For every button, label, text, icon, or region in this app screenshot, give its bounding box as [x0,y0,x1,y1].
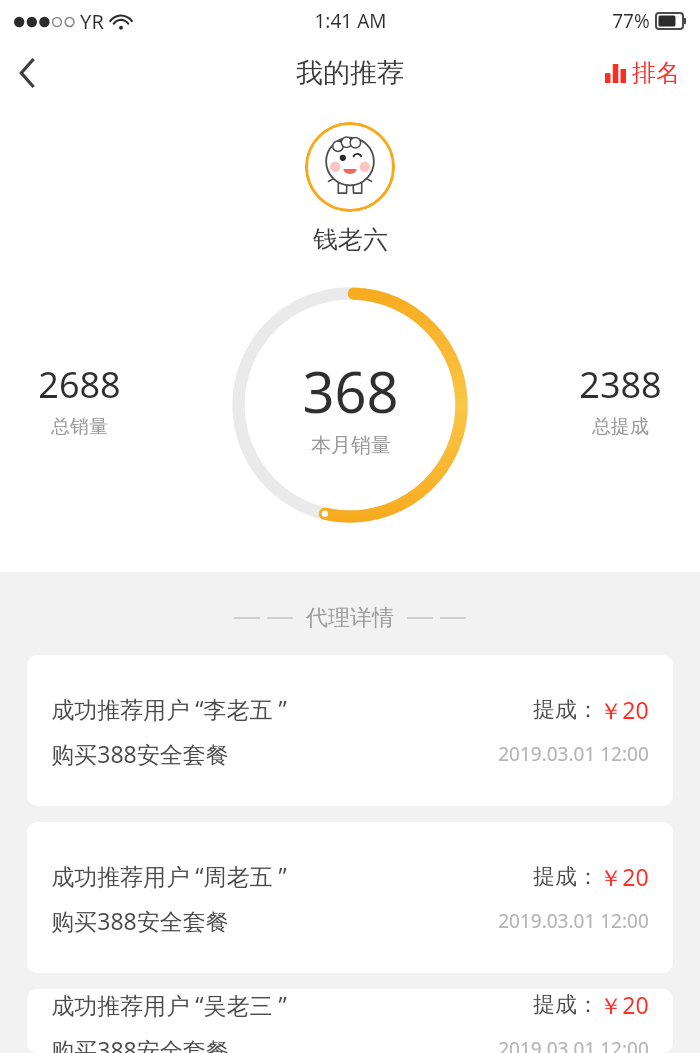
staticText: 77% [612,8,650,34]
staticText: 总销量 [51,415,108,439]
staticText: 提成： [533,696,599,724]
staticText: 2388 [579,360,662,409]
staticText: 钱老六 [313,224,388,255]
button[interactable]: 排名 [597,50,688,96]
staticText: YR [80,8,104,35]
staticText: 成功推荐用户 “吴老三 ” [51,989,287,1020]
staticText: 我的推荐 [296,56,404,90]
staticText: 代理详情 [306,604,394,632]
staticText: 成功推荐用户 “李老五 ” [51,693,287,724]
staticText: 购买388安全套餐 [51,738,229,769]
staticText: 2019.03.01 12:00 [498,741,649,767]
staticText: 368 [302,353,399,429]
staticText: 提成： [533,991,599,1019]
button[interactable]: 成功推荐用户 “吴老三 ” [27,989,673,1053]
staticText: 购买388安全套餐 [51,905,229,936]
staticText: 成功推荐用户 “周老五 ” [51,860,287,891]
staticText: ￥20 [599,861,649,892]
button[interactable]: 2688 [38,360,121,439]
staticText: 提成： [533,863,599,891]
staticText: 排名 [632,58,680,88]
button[interactable]: 成功推荐用户 “周老五 ” [27,822,673,973]
button[interactable]: 成功推荐用户 “李老五 ” [27,655,673,806]
staticText: ￥20 [599,989,649,1020]
staticText: 2019.03.01 12:00 [498,1036,649,1053]
staticText: 购买388安全套餐 [51,1034,229,1053]
staticText: 本月销量 [311,433,391,458]
staticText: 1:41 AM [314,8,387,34]
staticText: 2019.03.01 12:00 [498,908,649,934]
staticText: 2688 [38,360,121,409]
button[interactable]: Back [0,45,56,101]
staticText: 总提成 [592,415,649,439]
button[interactable]: 2388 [579,360,662,439]
staticText: ￥20 [599,694,649,725]
button[interactable]: Avatar [305,122,395,212]
